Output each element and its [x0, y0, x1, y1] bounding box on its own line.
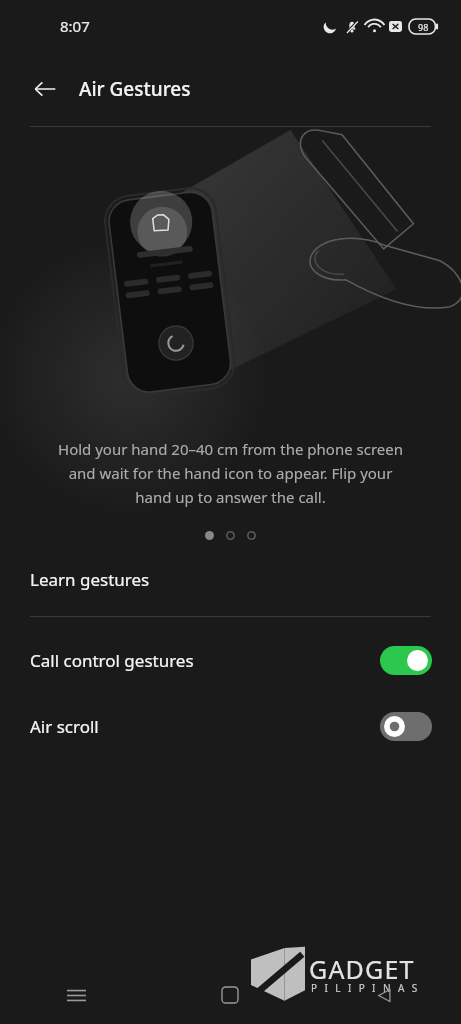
staticText: Call control gestures [30, 649, 194, 672]
staticText: Air scroll [30, 715, 99, 738]
button[interactable]: Air scroll [0, 693, 461, 759]
button[interactable]: On [380, 646, 432, 675]
staticText: Learn gestures [30, 568, 150, 591]
staticText: 98 [418, 21, 429, 33]
staticText: P I L I P I N A S [311, 981, 420, 995]
button[interactable]: Learn gestures [0, 556, 461, 602]
button[interactable]: Back [28, 72, 62, 106]
button[interactable]: Home [153, 966, 307, 1024]
button[interactable]: Recents [0, 966, 153, 1024]
staticText: 8:07 [60, 16, 90, 36]
staticText: Air Gestures [79, 76, 191, 102]
button[interactable]: Back [307, 966, 461, 1024]
button[interactable]: Off [380, 712, 432, 741]
button[interactable]: Call control gestures [0, 627, 461, 693]
staticText: GADGET [309, 952, 415, 986]
staticText: Hold your hand 20–40 cm from the phone s… [58, 439, 403, 507]
